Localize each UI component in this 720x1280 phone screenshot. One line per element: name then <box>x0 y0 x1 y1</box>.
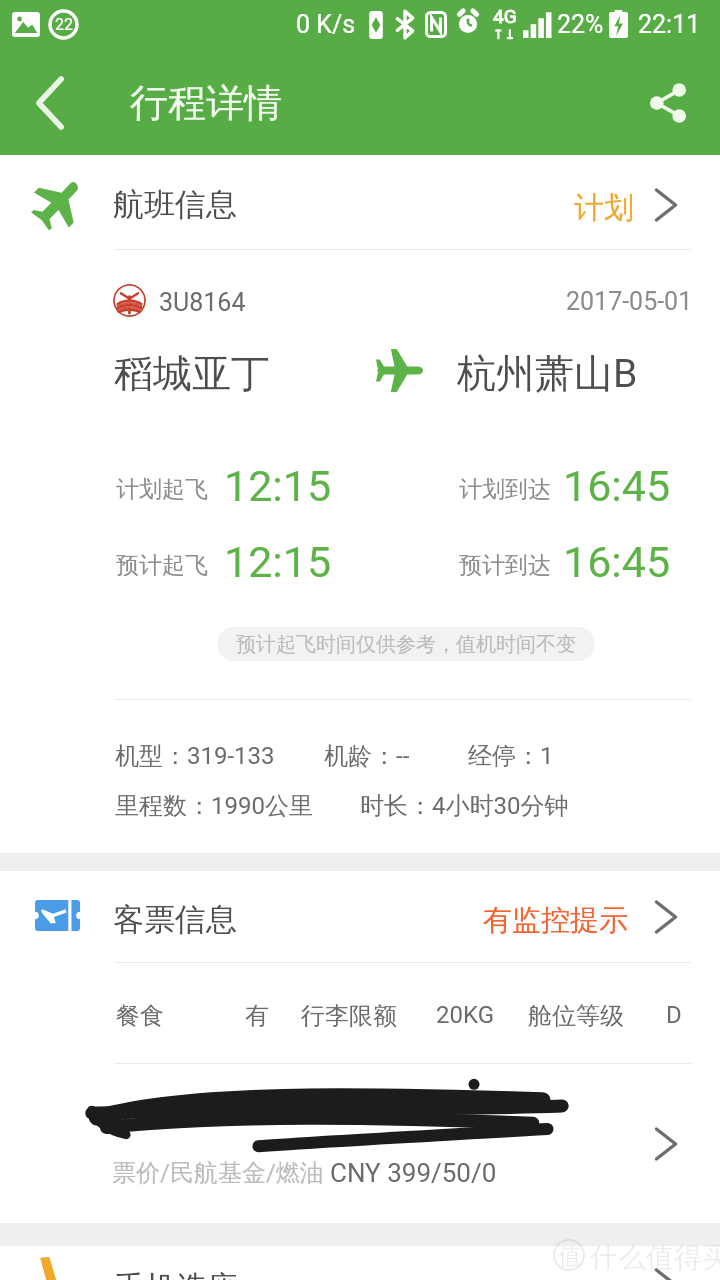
staticText: 里程数：1990公里 <box>115 791 313 821</box>
staticText: 预计到达 <box>459 551 551 580</box>
staticText: 机龄：-- <box>324 741 410 771</box>
staticText: CNY 399/50/0 <box>330 1158 497 1188</box>
staticText: 手机选座 <box>114 1268 238 1280</box>
staticText: 什么值得买 <box>590 1240 720 1275</box>
button[interactable]: Share <box>616 50 720 155</box>
staticText: 有监控提示 <box>483 902 628 939</box>
staticText: 票价/民航基金/燃油 <box>112 1158 330 1188</box>
staticText: 稻城亚丁 <box>114 349 270 398</box>
staticText: 时长：4小时30分钟 <box>360 791 569 821</box>
staticText: 3U8164 <box>159 288 246 317</box>
staticText: 22 <box>55 15 73 34</box>
staticText: 16:45 <box>563 537 671 587</box>
staticText: 预计起飞时间仅供参考，值机时间不变 <box>236 632 576 657</box>
staticText: 预计起飞 <box>116 551 208 580</box>
staticText: 行程详情 <box>130 79 282 127</box>
staticText: 行李限额 <box>301 1001 397 1031</box>
staticText: 航班信息 <box>113 185 237 224</box>
staticText: 值 <box>558 1242 581 1271</box>
staticText: 12:15 <box>224 537 332 587</box>
staticText: 舱位等级 <box>528 1001 624 1031</box>
staticText: 客票信息 <box>113 900 237 939</box>
button[interactable]: 票价/民航基金/燃油 <box>0 1060 720 1223</box>
staticText: 4G <box>493 5 517 27</box>
staticText: 0 K/s <box>296 10 356 39</box>
staticText: 计划起飞 <box>116 475 208 504</box>
staticText: 2017-05-01 <box>566 287 693 316</box>
button[interactable]: 客票信息 <box>0 871 720 962</box>
staticText: 计划到达 <box>459 475 551 504</box>
button[interactable]: 手机选座 <box>0 1246 720 1280</box>
staticText: 计划 <box>574 189 634 227</box>
staticText: 杭州萧山B <box>457 349 638 398</box>
staticText: 22% <box>557 10 604 39</box>
staticText: 有 <box>245 1001 269 1031</box>
staticText: D <box>666 1001 682 1029</box>
button[interactable]: 航班信息 <box>0 155 720 249</box>
button[interactable]: Back <box>0 50 100 155</box>
staticText: 20KG <box>436 1001 495 1029</box>
staticText: 12:15 <box>224 461 332 511</box>
staticText: 22:11 <box>638 10 701 39</box>
staticText: 餐食 <box>116 1001 164 1031</box>
staticText: 机型：319-133 <box>115 741 275 771</box>
staticText: 16:45 <box>563 461 671 511</box>
staticText: 经停：1 <box>468 741 554 771</box>
